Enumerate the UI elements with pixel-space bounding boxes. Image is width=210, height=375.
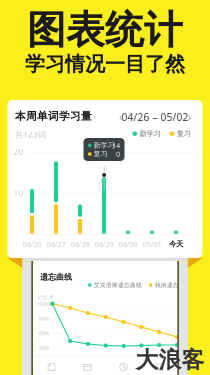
button[interactable]: 计划 [69,357,105,375]
staticText: 04/27 [46,239,65,249]
staticText: 0 [116,149,120,159]
staticText: 遗忘曲线 [40,272,72,282]
staticText: 20 [13,147,23,157]
staticText: 05/01 [142,239,161,249]
staticText: 新学习 [93,141,114,150]
button[interactable]: 统计 [105,357,141,375]
staticText: 04/30 [118,239,137,249]
staticText: 共123词 [15,129,46,140]
staticText: 40% [39,344,50,352]
staticText: 本周单词学习量 [15,109,92,123]
staticText: 复习 [93,149,107,158]
staticText: 14 [112,140,120,150]
staticText: 今天 [169,239,183,249]
staticText: 04/26 – 05/02 [121,110,188,124]
staticText: 大浪客 [135,346,204,374]
staticText: 记忆率 [37,294,55,301]
staticText: 10 [13,188,23,198]
staticText: 我的遗忘曲线 [155,281,191,289]
staticText: 04/29 [94,239,113,249]
staticText: 04/28 [70,239,89,249]
staticText: 图表统计 [27,6,183,54]
staticText: 复习 [177,129,191,138]
staticText: ‹ [119,109,122,124]
staticText: 艾宾浩斯遗忘曲线 [94,281,142,289]
button[interactable]: ‹ [117,110,193,123]
button[interactable]: 我的 [141,357,177,375]
staticText: 新学习 [140,129,161,138]
staticText: 100% [36,300,50,308]
staticText: › [188,109,191,124]
staticText: 学习情况一目了然 [25,51,185,77]
staticText: 80% [39,315,50,322]
staticText: 60% [39,329,50,337]
staticText: 04/26 [22,239,41,249]
button[interactable]: 单词 [33,357,69,375]
